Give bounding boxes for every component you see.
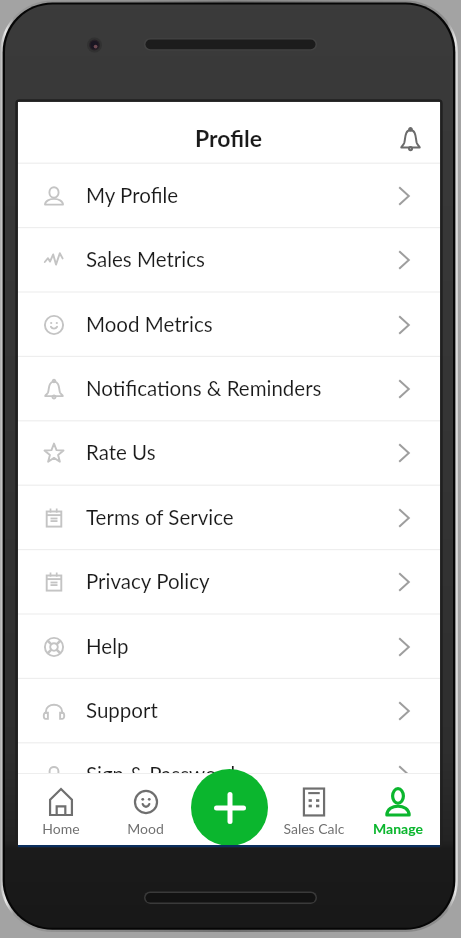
button[interactable]: My Profile [18,164,440,227]
staticText: Notifications & Reminders [86,376,322,401]
staticText: Home [42,820,80,837]
button[interactable]: Privacy Policy [18,550,440,613]
button[interactable]: Sales Metrics [18,228,440,291]
button[interactable]: Rate Us [18,421,440,484]
button[interactable]: Support [18,679,440,742]
button[interactable]: Home [18,774,103,845]
staticText: Manage [373,820,423,837]
staticText: Profile [195,124,263,152]
button[interactable]: Mood [103,774,188,845]
button[interactable]: Mood Metrics [18,293,440,356]
button[interactable]: Terms of Service [18,486,440,549]
button[interactable]: Manage [356,774,440,845]
button[interactable]: Notifications [388,117,432,161]
staticText: Mood [127,820,164,837]
button[interactable]: Notifications & Reminders [18,357,440,420]
button[interactable]: Help [18,615,440,678]
staticText: Terms of Service [86,505,234,530]
staticText: Sales Metrics [86,247,205,272]
staticText: Sign & Password [86,762,236,787]
staticText: Support [86,698,158,723]
button[interactable]: Sign & Password [18,743,440,806]
staticText: Rate Us [86,440,156,465]
staticText: Mood Metrics [86,312,213,337]
button[interactable]: Sales Calc [272,774,356,845]
staticText: Help [86,634,129,659]
staticText: My Profile [86,183,179,208]
staticText: Sales Calc [283,820,345,837]
button[interactable]: Add [191,769,268,846]
staticText: Privacy Policy [86,569,210,594]
